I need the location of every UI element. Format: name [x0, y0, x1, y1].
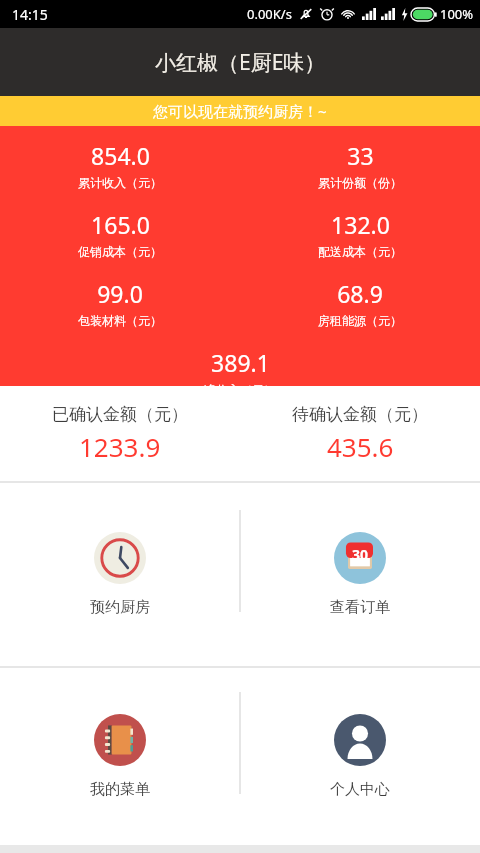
staticText: 小红椒（E厨E味） [155, 48, 326, 77]
button[interactable]: 待确认金额（元） [240, 404, 480, 464]
staticText: 0.00K/s [247, 5, 292, 23]
staticText: 33 [347, 140, 374, 171]
staticText: 查看订单 [330, 598, 390, 617]
staticText: 14:15 [12, 5, 48, 24]
staticText: 99.0 [97, 278, 143, 309]
staticText: 30 [352, 545, 369, 564]
staticText: 我的菜单 [90, 780, 150, 799]
staticText: 165.0 [91, 209, 150, 240]
button[interactable]: 个人中心 Profile [240, 706, 480, 807]
staticText: 房租能源（元） [318, 313, 402, 328]
staticText: 100% [440, 5, 474, 23]
staticText: 1233.9 [79, 429, 161, 464]
button[interactable]: 我的菜单 My menu [0, 706, 240, 807]
staticText: 包装材料（元） [78, 313, 162, 328]
staticText: 个人中心 [330, 780, 390, 799]
button[interactable]: 预约厨房 Reserve kitchen [0, 524, 240, 625]
staticText: 待确认金额（元） [292, 404, 428, 425]
staticText: 389.1 [211, 347, 270, 378]
staticText: 854.0 [91, 140, 150, 171]
staticText: 累计收入（元） [78, 175, 162, 190]
staticText: 435.6 [327, 429, 394, 464]
staticText: 您可以现在就预约厨房！~ [153, 101, 327, 121]
staticText: 配送成本（元） [318, 244, 402, 259]
button[interactable]: 已确认金额（元） [0, 404, 240, 464]
staticText: 净收入（元） [204, 382, 276, 386]
staticText: 促销成本（元） [78, 244, 162, 259]
button[interactable]: 查看订单 View orders [240, 524, 480, 625]
staticText: 预约厨房 [90, 598, 150, 617]
staticText: 累计份额（份） [318, 175, 402, 190]
staticText: 已确认金额（元） [52, 404, 188, 425]
staticText: 68.9 [337, 278, 383, 309]
staticText: 132.0 [331, 209, 390, 240]
